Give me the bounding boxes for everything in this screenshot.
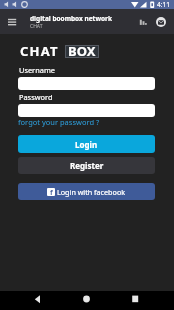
staticText: Password — [19, 92, 53, 102]
button[interactable]: f — [18, 183, 155, 200]
button[interactable] — [0, 291, 58, 310]
button[interactable] — [140, 15, 154, 29]
button[interactable] — [18, 104, 155, 117]
staticText: 4:11 — [157, 0, 170, 9]
button[interactable] — [4, 14, 20, 30]
button[interactable]: Register — [18, 157, 155, 174]
button[interactable] — [154, 15, 168, 29]
staticText: Login with facebook — [57, 187, 126, 197]
button[interactable] — [116, 291, 174, 310]
staticText: CHAT — [20, 42, 59, 60]
staticText: Login — [75, 139, 98, 150]
staticText: CHAT — [30, 23, 43, 30]
staticText: BOX — [68, 42, 96, 60]
staticText: digital boombox network — [30, 14, 112, 23]
button[interactable] — [58, 291, 116, 310]
button[interactable]: Login — [18, 135, 155, 153]
staticText: f — [50, 188, 53, 196]
button[interactable]: forgot your password ? — [18, 117, 100, 127]
staticText: Register — [70, 160, 104, 171]
staticText: Username — [19, 65, 55, 75]
button[interactable] — [18, 77, 155, 90]
